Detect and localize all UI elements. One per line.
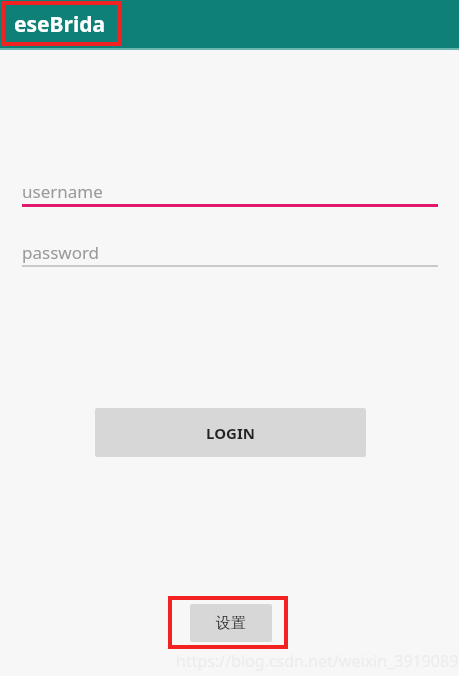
staticText: eseBrida [14, 10, 106, 39]
staticText: username [22, 180, 103, 203]
button[interactable]: 设置 [190, 604, 272, 642]
button[interactable]: LOGIN [95, 408, 366, 457]
staticText: https://blog.csdn.net/weixin_39190897 [176, 650, 459, 672]
staticText: LOGIN [206, 423, 255, 443]
staticText: password [22, 241, 100, 264]
staticText: 设置 [216, 614, 246, 633]
